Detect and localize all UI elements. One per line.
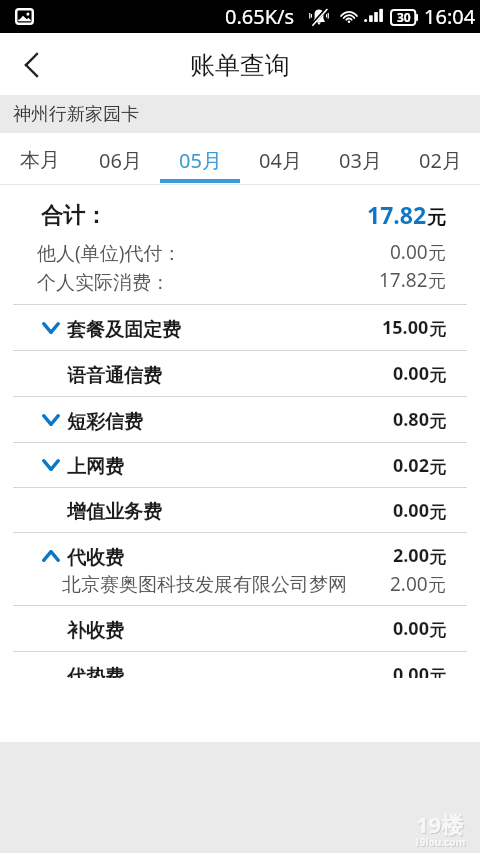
staticText: 17.82 — [367, 199, 427, 230]
staticText: 19lou.com — [415, 836, 467, 850]
staticText: 0.00 — [393, 616, 429, 641]
staticText: 0.00 — [390, 239, 428, 265]
staticText: 0.00 — [393, 361, 429, 386]
button[interactable]: 代垫费 — [0, 652, 480, 678]
staticText: 套餐及固定费 — [67, 318, 181, 342]
staticText: 元 — [428, 270, 446, 293]
staticText: 合计： — [41, 202, 107, 230]
staticText: 代垫费 — [67, 665, 124, 678]
staticText: 北京赛奥图科技发展有限公司梦网 — [62, 573, 347, 597]
staticText: 2.00 — [390, 571, 428, 597]
staticText: 元 — [429, 620, 446, 641]
staticText: 元 — [428, 242, 446, 265]
staticText: 元 — [429, 457, 446, 478]
staticText: 元 — [429, 319, 446, 340]
staticText: 05月 — [179, 147, 222, 174]
staticText: 03月 — [339, 147, 382, 174]
button[interactable]: 神州行新家园卡 — [0, 95, 480, 133]
staticText: 元 — [429, 547, 446, 568]
staticText: 0.65K/s — [225, 3, 295, 30]
staticText: 元 — [429, 411, 446, 432]
staticText: 17.82 — [379, 267, 428, 293]
staticText: 19楼 — [417, 810, 465, 840]
staticText: 02月 — [419, 147, 462, 174]
button[interactable]: 上网费 — [0, 443, 480, 487]
staticText: 元 — [429, 365, 446, 386]
other: Screenshot — [15, 8, 34, 25]
staticText: 0.00 — [393, 498, 429, 523]
staticText: 上网费 — [67, 455, 124, 479]
staticText: 补收费 — [67, 619, 124, 643]
staticText: 元 — [427, 206, 446, 230]
staticText: 30 — [397, 9, 411, 25]
staticText: 16:04 — [424, 3, 476, 30]
staticText: 增值业务费 — [67, 500, 162, 524]
staticText: 元 — [428, 574, 446, 597]
button[interactable]: 短彩信费 — [0, 397, 480, 442]
staticText: 04月 — [259, 147, 302, 174]
button[interactable]: 本月 — [0, 133, 80, 182]
button[interactable]: 代收费 — [0, 533, 480, 605]
staticText: 账单查询 — [190, 50, 290, 81]
staticText: 15.00 — [382, 315, 429, 340]
staticText: 19lou.com — [414, 835, 466, 849]
staticText: 语音通信费 — [67, 364, 162, 388]
button[interactable]: 02月 — [400, 133, 480, 182]
staticText: 0.02 — [393, 453, 429, 478]
staticText: 神州行新家园卡 — [13, 103, 139, 126]
staticText: 短彩信费 — [67, 410, 143, 434]
button[interactable]: 06月 — [80, 133, 160, 182]
button[interactable]: Back — [0, 33, 62, 95]
staticText: 本月 — [20, 148, 60, 173]
staticText: 代收费 — [67, 546, 124, 570]
staticText: 元 — [429, 666, 446, 678]
staticText: 2.00 — [393, 543, 429, 568]
staticText: 他人(单位)代付： — [37, 240, 182, 266]
button[interactable]: 05月 — [160, 133, 240, 182]
button[interactable]: 增值业务费 — [0, 488, 480, 532]
staticText: 个人实际消费： — [37, 271, 170, 295]
button[interactable]: 04月 — [240, 133, 320, 182]
staticText: 0.00 — [393, 662, 429, 678]
button[interactable]: 套餐及固定费 — [0, 305, 480, 350]
staticText: 元 — [429, 502, 446, 523]
button[interactable]: 语音通信费 — [0, 351, 480, 396]
staticText: 06月 — [99, 147, 142, 174]
button[interactable]: 补收费 — [0, 606, 480, 651]
button[interactable]: 03月 — [320, 133, 400, 182]
staticText: 0.80 — [393, 407, 429, 432]
staticText: 19楼 — [416, 809, 464, 839]
